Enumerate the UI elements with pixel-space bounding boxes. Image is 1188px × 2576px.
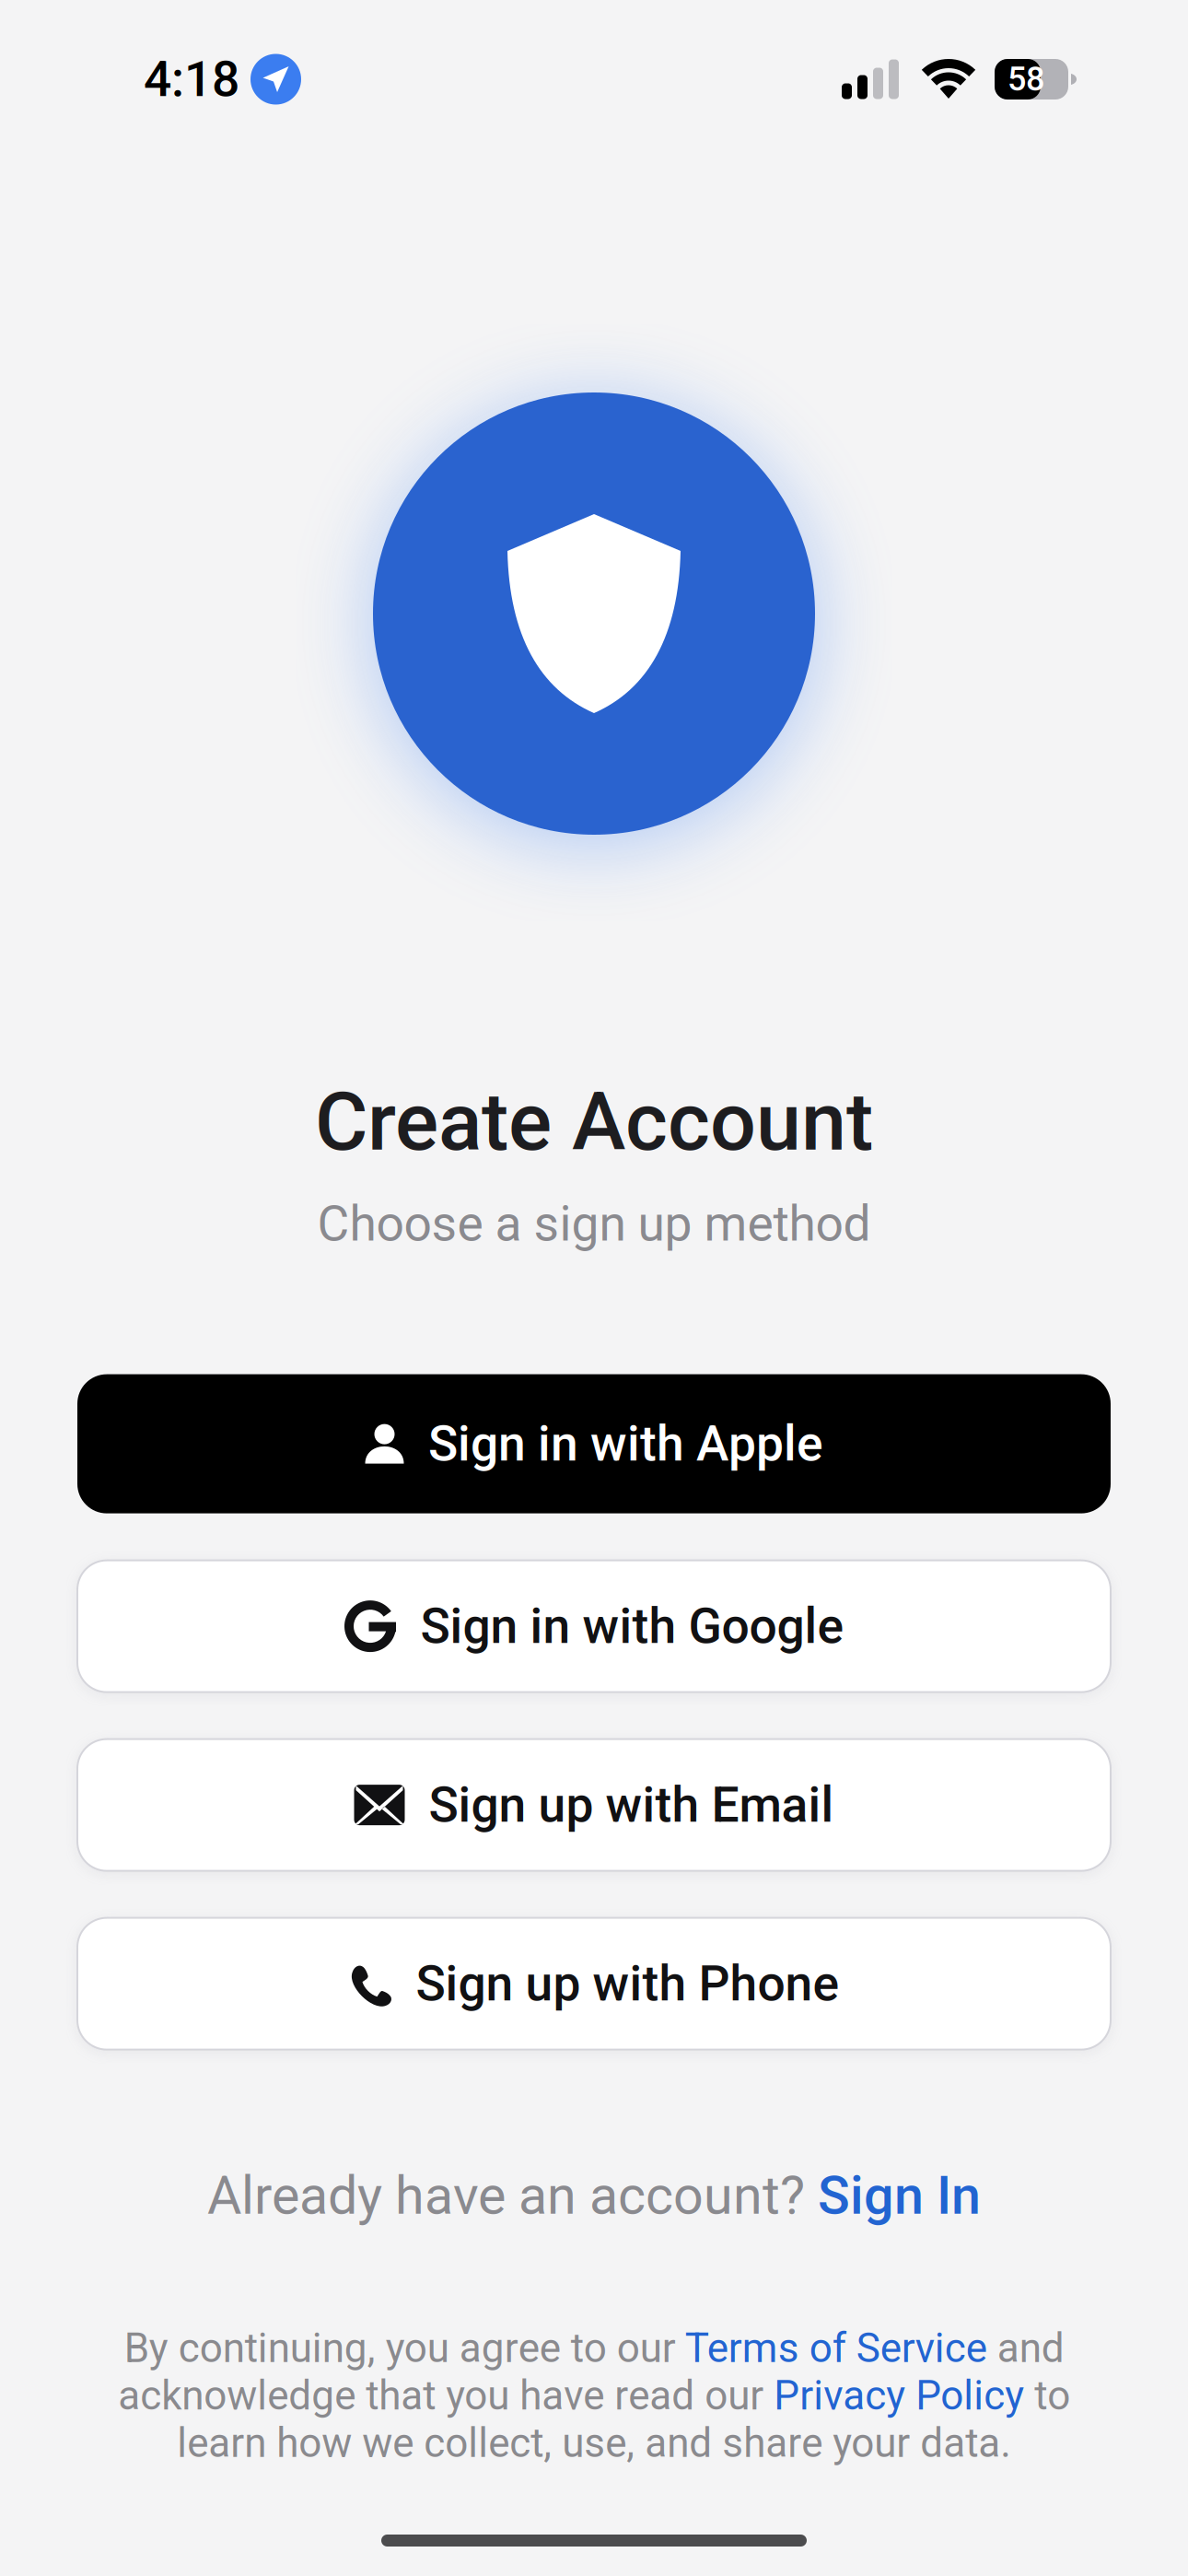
staticText: Create Account — [315, 1074, 873, 1169]
staticText: Sign in with Google — [420, 1597, 844, 1655]
staticText: By continuing, you agree to our Terms of… — [118, 2324, 1070, 2467]
staticText: 58 — [1007, 60, 1044, 99]
staticText: Already have an account? Sign In — [207, 2165, 981, 2227]
button[interactable]: Already have an account? Sign In — [207, 2165, 981, 2227]
button[interactable]: Sign in with Apple — [77, 1374, 1111, 1513]
button[interactable]: Sign up with Email — [77, 1739, 1111, 1871]
button[interactable]: Sign in with Google — [77, 1560, 1111, 1692]
staticText: 4:18 — [144, 50, 239, 108]
staticText: Sign up with Phone — [416, 1955, 839, 2013]
staticText: Choose a sign up method — [317, 1195, 871, 1253]
staticText: Sign in with Apple — [428, 1415, 823, 1473]
staticText: Sign up with Email — [429, 1776, 834, 1834]
button[interactable]: Sign up with Phone — [77, 1918, 1111, 2050]
